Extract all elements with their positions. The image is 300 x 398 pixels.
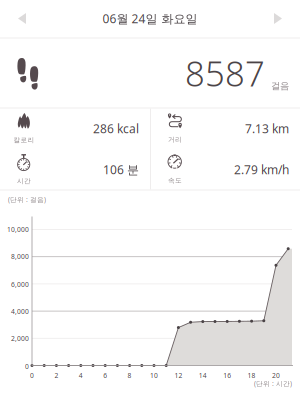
staticText: 8 — [128, 371, 132, 380]
staticText: 20 — [272, 371, 280, 380]
staticText: (단위 : 걸음) — [8, 195, 46, 204]
staticText: 14 — [199, 371, 207, 380]
staticText: 4 — [79, 371, 83, 380]
button[interactable]: Next day — [260, 1, 300, 36]
staticText: 12 — [174, 371, 182, 380]
button[interactable]: 속도 — [151, 149, 300, 190]
staticText: 6 — [103, 371, 107, 380]
staticText: 18 — [248, 371, 256, 380]
staticText: 10 — [150, 371, 158, 380]
staticText: 106 분 — [103, 161, 139, 177]
staticText: 6,000 — [11, 280, 29, 289]
staticText: 걸음 — [271, 80, 289, 92]
staticText: 0 — [30, 371, 34, 380]
button[interactable]: Previous day — [0, 1, 40, 36]
staticText: 8587 — [185, 50, 265, 96]
staticText: 2.79 km/h — [234, 161, 289, 177]
staticText: 거리 — [168, 135, 182, 144]
button[interactable]: 거리 — [151, 108, 300, 149]
staticText: 8,000 — [11, 252, 29, 261]
staticText: 06월 24일 화요일 — [102, 10, 197, 26]
staticText: 2,000 — [11, 334, 29, 343]
staticText: 0 — [25, 362, 29, 371]
staticText: 칼로리 — [13, 136, 34, 144]
button[interactable]: 시간 — [0, 149, 150, 190]
staticText: 286 kcal — [93, 120, 139, 136]
button[interactable]: 칼로리 — [0, 108, 150, 149]
staticText: 7.13 km — [245, 120, 289, 136]
staticText: 16 — [223, 371, 231, 380]
staticText: 속도 — [168, 176, 182, 185]
staticText: 4,000 — [11, 307, 29, 316]
staticText: (단위 : 시간) — [254, 379, 292, 388]
staticText: 2 — [54, 371, 58, 380]
staticText: 10,000 — [7, 225, 29, 234]
staticText: 시간 — [17, 177, 31, 185]
